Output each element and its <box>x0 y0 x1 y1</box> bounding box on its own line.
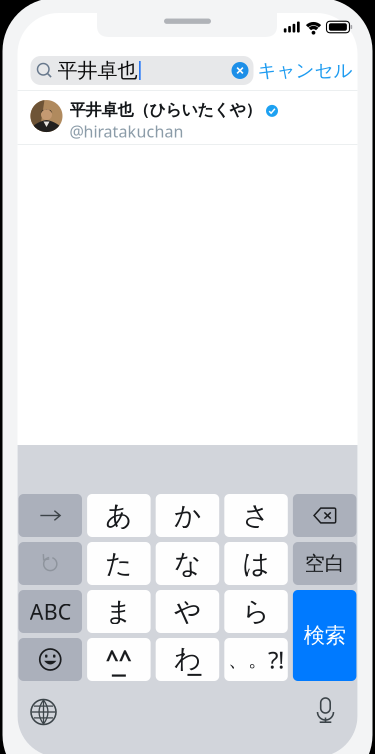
staticText: ま <box>105 595 132 628</box>
button[interactable]: な <box>156 542 219 585</box>
staticText: か <box>174 499 201 532</box>
button[interactable] <box>293 494 356 537</box>
button[interactable]: ら <box>224 590 288 633</box>
staticText: 平井卓也（ひらいたくや） <box>69 100 261 120</box>
staticText: は <box>242 547 269 580</box>
button[interactable]: キャンセル <box>253 56 356 85</box>
button[interactable]: ^^ <box>87 638 151 681</box>
button[interactable]: や <box>156 590 219 633</box>
staticText: や <box>174 595 201 628</box>
staticText: ^^ <box>106 643 132 673</box>
staticText: あ <box>105 499 132 532</box>
button[interactable]: か <box>156 494 219 537</box>
staticText: @hiratakuchan <box>69 121 183 142</box>
staticText: さ <box>242 499 269 532</box>
button[interactable]: は <box>224 542 288 585</box>
button[interactable]: ABC <box>18 590 82 633</box>
staticText: な <box>174 547 201 580</box>
button[interactable] <box>293 590 356 633</box>
button[interactable] <box>18 542 82 585</box>
staticText: 平井卓也 <box>57 58 137 83</box>
button[interactable]: 平井卓也 <box>30 56 253 85</box>
button[interactable]: Switch keyboard <box>30 699 56 725</box>
staticText: 検索 <box>304 622 346 649</box>
button[interactable]: ま <box>87 590 151 633</box>
button[interactable] <box>293 638 356 681</box>
button[interactable]: さ <box>224 494 288 537</box>
staticText: 、。 <box>228 647 268 672</box>
staticText: ら <box>242 595 269 628</box>
button[interactable]: 検索 <box>293 590 356 681</box>
staticText: ?! <box>268 644 284 675</box>
button[interactable]: 空白 <box>293 542 356 585</box>
button[interactable]: Dictation <box>314 698 336 726</box>
button[interactable]: あ <box>87 494 151 537</box>
staticText: わ <box>174 642 201 675</box>
staticText: ABC <box>30 597 71 626</box>
staticText: キャンセル <box>257 59 352 82</box>
button[interactable]: 、。 <box>224 638 288 681</box>
staticText: 空白 <box>305 551 345 576</box>
button[interactable] <box>18 494 82 537</box>
staticText: た <box>105 547 132 580</box>
button[interactable]: た <box>87 542 151 585</box>
button[interactable]: わ <box>156 638 219 681</box>
button[interactable] <box>18 638 82 681</box>
button[interactable]: 平井卓也（ひらいたくや） <box>17 92 357 144</box>
